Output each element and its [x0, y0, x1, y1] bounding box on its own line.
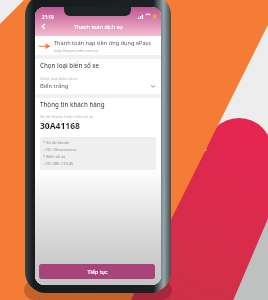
staticText: - VD: 10xxxxxxxxx	[43, 147, 77, 152]
button[interactable]: Tiếp tục	[39, 264, 155, 279]
staticText: Chọn loại biển số xe	[40, 76, 78, 81]
staticText: Chọn loại biển số xe	[40, 61, 100, 69]
staticText: Số tài khoản hoặc biển số xe	[40, 114, 94, 119]
button[interactable]: Chọn loại biển số xe	[40, 76, 156, 90]
staticText: Thanh toán nạp tiền ứng dụng ePass	[54, 39, 151, 47]
button[interactable]: Thanh toán nạp tiền ứng dụng ePass	[35, 36, 161, 55]
button[interactable]: Back	[37, 20, 50, 33]
staticText: Tiếp tục	[87, 268, 108, 275]
staticText: Biển trắng	[40, 82, 69, 90]
staticText: - VD: 98E-123.45	[43, 161, 74, 166]
staticText: Thông tin khách hàng	[40, 100, 105, 108]
staticText: 21:19	[42, 14, 54, 20]
staticText: * Số tài khoản	[43, 140, 70, 145]
staticText: * Biển số xe	[43, 154, 66, 159]
staticText: Thanh toán dịch vụ	[74, 23, 123, 30]
staticText: http://epass-vdtc.com.vn	[54, 48, 99, 53]
staticText: 30A41168	[40, 120, 80, 132]
